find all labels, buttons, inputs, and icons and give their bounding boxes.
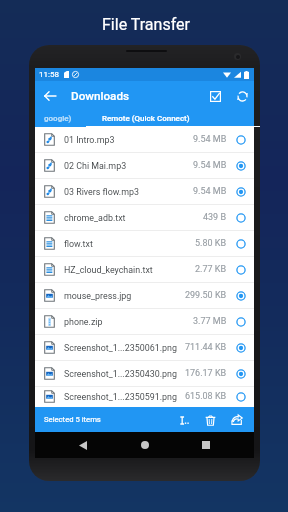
button[interactable]: Home bbox=[132, 432, 158, 458]
staticText: 9.54 MB bbox=[193, 134, 227, 145]
staticText: Downloads bbox=[71, 89, 130, 103]
button[interactable]: flow.txt bbox=[35, 231, 254, 256]
staticText: Screenshot_1...2350061.png bbox=[64, 343, 177, 353]
staticText: 9.54 MB bbox=[193, 160, 227, 171]
button[interactable]: Screenshot_1...2350430.png bbox=[35, 361, 254, 386]
button[interactable]: Share bbox=[228, 411, 246, 429]
staticText: Selected 5 items bbox=[44, 415, 101, 424]
button[interactable]: 01 Intro.mp3 bbox=[35, 127, 254, 152]
staticText: HZ_cloud_keychain.txt bbox=[64, 265, 153, 275]
staticText: phone.zip bbox=[64, 317, 103, 327]
button[interactable]: Select all bbox=[206, 87, 224, 105]
staticText: Screenshot_1...2350591.png bbox=[64, 392, 177, 402]
staticText: 711.44 KB bbox=[185, 342, 227, 353]
staticText: mouse_press.jpg bbox=[64, 291, 132, 301]
staticText: 615.08 KB bbox=[185, 391, 227, 402]
button[interactable]: Remote (Quick Connect) bbox=[86, 110, 254, 127]
staticText: chrome_adb.txt bbox=[64, 213, 126, 223]
button[interactable]: 02 Chi Mai.mp3 bbox=[35, 153, 254, 178]
staticText: 3.77 MB bbox=[193, 316, 227, 327]
staticText: 439 B bbox=[203, 212, 227, 223]
button[interactable]: Recents bbox=[193, 432, 219, 458]
button[interactable]: HZ_cloud_keychain.txt bbox=[35, 257, 254, 282]
button[interactable]: phone.zip bbox=[35, 309, 254, 334]
staticText: 9.54 MB bbox=[193, 186, 227, 197]
staticText: 5.80 KB bbox=[195, 238, 227, 249]
staticText: 176.17 KB bbox=[185, 368, 227, 379]
button[interactable]: Screenshot_1...2350061.png bbox=[35, 335, 254, 360]
staticText: google) bbox=[44, 114, 72, 123]
staticText: flow.txt bbox=[64, 239, 93, 249]
button[interactable]: Rename bbox=[174, 411, 192, 429]
button[interactable]: google) bbox=[35, 110, 80, 127]
staticText: 02 Chi Mai.mp3 bbox=[64, 161, 127, 171]
staticText: 01 Intro.mp3 bbox=[64, 135, 115, 145]
button[interactable]: Back bbox=[44, 88, 60, 104]
staticText: 2.77 KB bbox=[195, 264, 227, 275]
button[interactable]: Screenshot_1...2350591.png bbox=[35, 387, 254, 406]
staticText: 11:58 bbox=[39, 70, 59, 79]
button[interactable]: 03 Rivers flow.mp3 bbox=[35, 179, 254, 204]
staticText: File Transfer bbox=[102, 15, 190, 34]
button[interactable]: mouse_press.jpg bbox=[35, 283, 254, 308]
button[interactable]: Refresh bbox=[233, 87, 251, 105]
button[interactable]: Delete bbox=[201, 411, 219, 429]
staticText: 03 Rivers flow.mp3 bbox=[64, 187, 140, 197]
staticText: 299.50 KB bbox=[185, 290, 227, 301]
button[interactable]: chrome_adb.txt bbox=[35, 205, 254, 230]
button[interactable]: Back bbox=[70, 432, 96, 458]
staticText: Remote (Quick Connect) bbox=[102, 114, 190, 123]
staticText: Screenshot_1...2350430.png bbox=[64, 369, 177, 379]
